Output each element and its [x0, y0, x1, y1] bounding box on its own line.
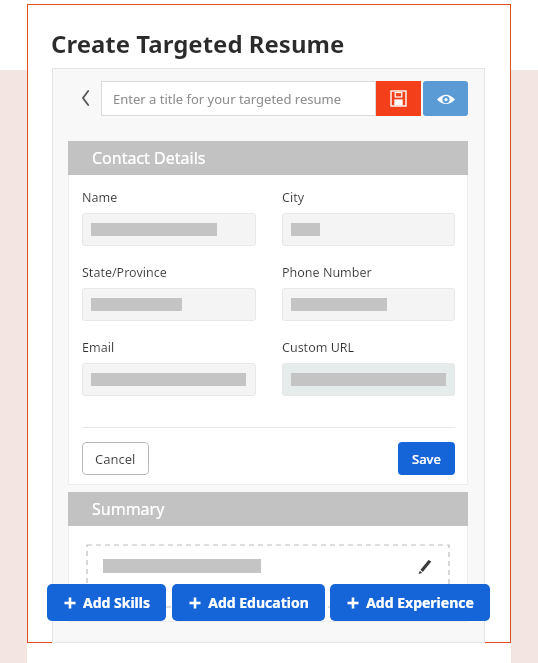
button[interactable]: Add Experience — [330, 584, 490, 621]
staticText: Add Skills — [83, 593, 150, 612]
staticText: Enter a title for your targeted resume — [113, 90, 342, 108]
staticText: City — [282, 189, 305, 206]
button[interactable]: Save — [398, 442, 455, 475]
staticText: Create Targeted Resume — [51, 27, 345, 60]
button[interactable] — [82, 213, 256, 246]
button[interactable] — [282, 363, 455, 396]
button[interactable]: Back — [76, 84, 96, 112]
button[interactable]: Edit summary — [415, 557, 435, 577]
button[interactable] — [82, 288, 256, 321]
button[interactable]: Add Skills — [47, 584, 166, 621]
button[interactable] — [82, 363, 256, 396]
staticText: Name — [82, 189, 118, 206]
button[interactable] — [282, 213, 455, 246]
button[interactable]: Enter a title for your targeted resume — [101, 81, 376, 116]
button[interactable]: Cancel — [82, 442, 149, 475]
staticText: Add Education — [208, 593, 309, 612]
staticText: Cancel — [95, 450, 136, 468]
staticText: Add Experience — [366, 593, 474, 612]
staticText: Summary — [92, 498, 165, 520]
button[interactable] — [282, 288, 455, 321]
staticText: Contact Details — [92, 147, 206, 169]
button[interactable]: Add Education — [172, 584, 325, 621]
staticText: Save — [412, 450, 441, 468]
staticText: Phone Number — [282, 264, 372, 281]
staticText: Email — [82, 339, 115, 356]
staticText: Custom URL — [282, 339, 355, 356]
staticText: State/Province — [82, 264, 167, 281]
button[interactable]: Save — [376, 81, 421, 116]
button[interactable]: Preview — [423, 81, 468, 116]
